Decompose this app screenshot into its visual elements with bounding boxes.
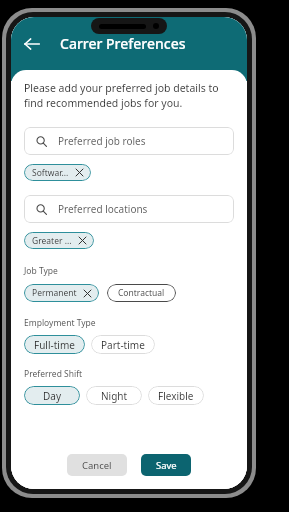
button[interactable]: Greater ... <box>24 232 94 249</box>
staticText: Employment Type <box>24 317 96 329</box>
staticText: Contractual <box>118 287 165 299</box>
staticText: Day <box>43 389 62 403</box>
button[interactable]: Permanent <box>24 284 99 302</box>
staticText: Full-time <box>34 338 75 352</box>
staticText: Greater ... <box>32 235 72 247</box>
button[interactable]: Softwar... <box>24 164 91 181</box>
button[interactable]: Back <box>16 28 48 60</box>
staticText: Softwar... <box>32 167 69 179</box>
button[interactable]: Part-time <box>91 335 155 354</box>
staticText: Cancel <box>82 459 112 472</box>
button[interactable]: Contractual <box>107 284 176 302</box>
staticText: Carrer Preferences <box>60 34 186 53</box>
staticText: Part-time <box>101 338 145 352</box>
button[interactable]: Day <box>24 386 80 405</box>
button[interactable]: Preferred locations <box>24 195 234 223</box>
staticText: Flexible <box>158 389 194 403</box>
button[interactable]: Flexible <box>148 386 204 405</box>
button[interactable]: Save <box>141 454 191 476</box>
staticText: Save <box>156 459 177 472</box>
button[interactable]: Preferred job roles <box>24 127 234 155</box>
staticText: Please add your preferred job details to… <box>24 81 234 110</box>
staticText: Permanent <box>32 287 77 299</box>
button[interactable]: Full-time <box>24 335 85 354</box>
staticText: Preferred Shift <box>24 368 83 380</box>
button[interactable]: Night <box>86 386 142 405</box>
staticText: Preferred job roles <box>58 134 146 148</box>
staticText: Preferred locations <box>58 202 148 216</box>
staticText: Job Type <box>24 265 58 277</box>
staticText: Night <box>101 389 128 403</box>
button[interactable]: Cancel <box>67 454 127 476</box>
